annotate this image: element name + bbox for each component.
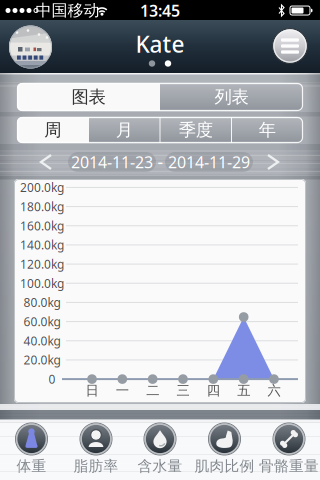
- button[interactable]: 列表: [160, 83, 303, 111]
- staticText: 季度: [179, 119, 213, 141]
- staticText: 13:45: [140, 0, 180, 21]
- staticText: 脂肪率: [73, 457, 118, 475]
- staticText: 2014-11-23: [71, 151, 153, 173]
- button[interactable]: 周: [17, 117, 88, 143]
- staticText: 列表: [214, 86, 248, 108]
- staticText: 月: [116, 119, 133, 141]
- staticText: 140.0kg: [20, 237, 64, 253]
- button[interactable]: 体重: [0, 421, 63, 477]
- staticText: 180.0kg: [20, 199, 64, 214]
- button[interactable]: 骨骼重量: [257, 421, 320, 477]
- staticText: 80.0kg: [23, 294, 60, 310]
- staticText: 含水量: [137, 457, 182, 475]
- staticText: 0: [48, 371, 55, 387]
- button[interactable]: Previous week: [39, 154, 53, 170]
- staticText: 2014-11-29: [168, 151, 250, 173]
- button[interactable]: Menu: [272, 28, 307, 63]
- staticText: 二: [146, 382, 159, 399]
- button[interactable]: 年: [231, 117, 303, 143]
- staticText: 三: [176, 382, 189, 399]
- staticText: 20.0kg: [23, 352, 60, 368]
- button[interactable]: 图表: [17, 83, 160, 111]
- staticText: 四: [207, 382, 220, 399]
- staticText: 六: [267, 382, 280, 399]
- staticText: 周: [44, 119, 61, 141]
- button[interactable]: 含水量: [128, 421, 192, 477]
- staticText: 骨骼重量: [259, 457, 319, 475]
- staticText: 100.0kg: [20, 275, 64, 291]
- staticText: 体重: [16, 457, 46, 475]
- button[interactable]: Next week: [266, 154, 280, 170]
- staticText: 年: [259, 119, 276, 141]
- staticText: 日: [85, 382, 98, 399]
- button[interactable]: Profile photo: [9, 25, 52, 68]
- staticText: 120.0kg: [20, 256, 64, 272]
- staticText: -: [157, 150, 163, 173]
- button[interactable]: 季度: [160, 117, 231, 143]
- staticText: 一: [116, 382, 129, 399]
- button[interactable]: 肌肉比例: [192, 421, 256, 477]
- staticText: 肌肉比例: [194, 457, 254, 475]
- staticText: 200.0kg: [20, 179, 64, 195]
- staticText: 中国移动: [35, 1, 99, 20]
- staticText: 图表: [71, 86, 105, 108]
- staticText: 40.0kg: [23, 333, 60, 349]
- staticText: 60.0kg: [23, 314, 60, 329]
- button[interactable]: 脂肪率: [64, 421, 128, 477]
- staticText: 160.0kg: [20, 218, 64, 234]
- staticText: 五: [237, 382, 250, 399]
- button[interactable]: 月: [88, 117, 160, 143]
- staticText: Kate: [135, 29, 184, 59]
